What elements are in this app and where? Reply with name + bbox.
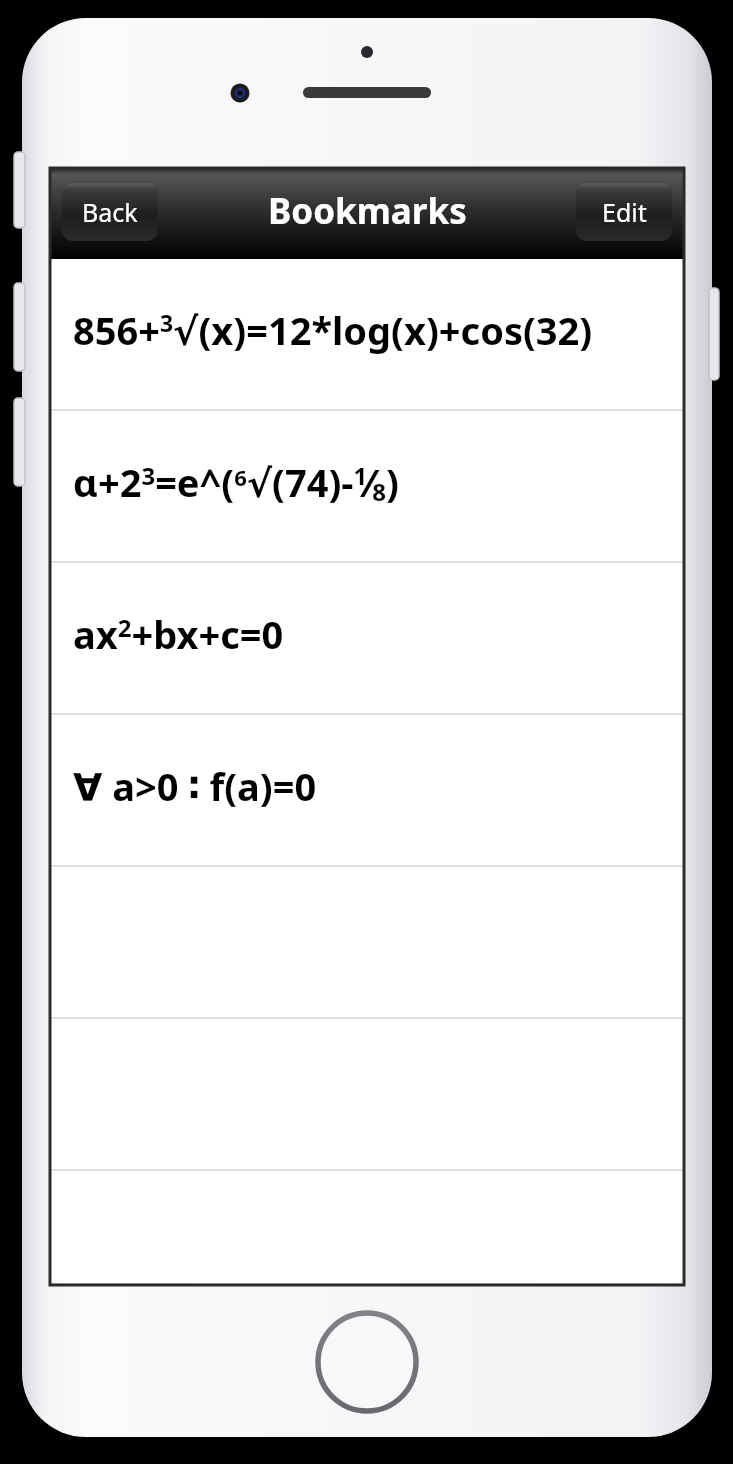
staticText: Edit <box>602 195 647 229</box>
button[interactable]: ax2+bx+c=0 <box>50 563 684 715</box>
button[interactable]: Edit <box>576 183 672 241</box>
staticText: Bookmarks <box>268 187 467 235</box>
button[interactable]: ∀ a>0 ∶ f(a)=0 <box>50 715 684 867</box>
button[interactable] <box>50 867 684 1019</box>
button[interactable] <box>50 1019 684 1171</box>
button[interactable]: Back <box>62 183 158 241</box>
staticText: ∀ a>0 ∶ f(a)=0 <box>73 760 317 812</box>
staticText: Back <box>82 195 138 229</box>
staticText: α+23=e^(6√(74)-1⁄8) <box>73 456 399 508</box>
staticText: ax2+bx+c=0 <box>73 608 284 660</box>
button[interactable] <box>50 1171 684 1285</box>
button[interactable]: α+23=e^(6√(74)-1⁄8) <box>50 411 684 563</box>
button[interactable]: 856+3√(x)=12*log(x)+cos(32) <box>50 259 684 411</box>
staticText: 856+3√(x)=12*log(x)+cos(32) <box>73 304 593 356</box>
